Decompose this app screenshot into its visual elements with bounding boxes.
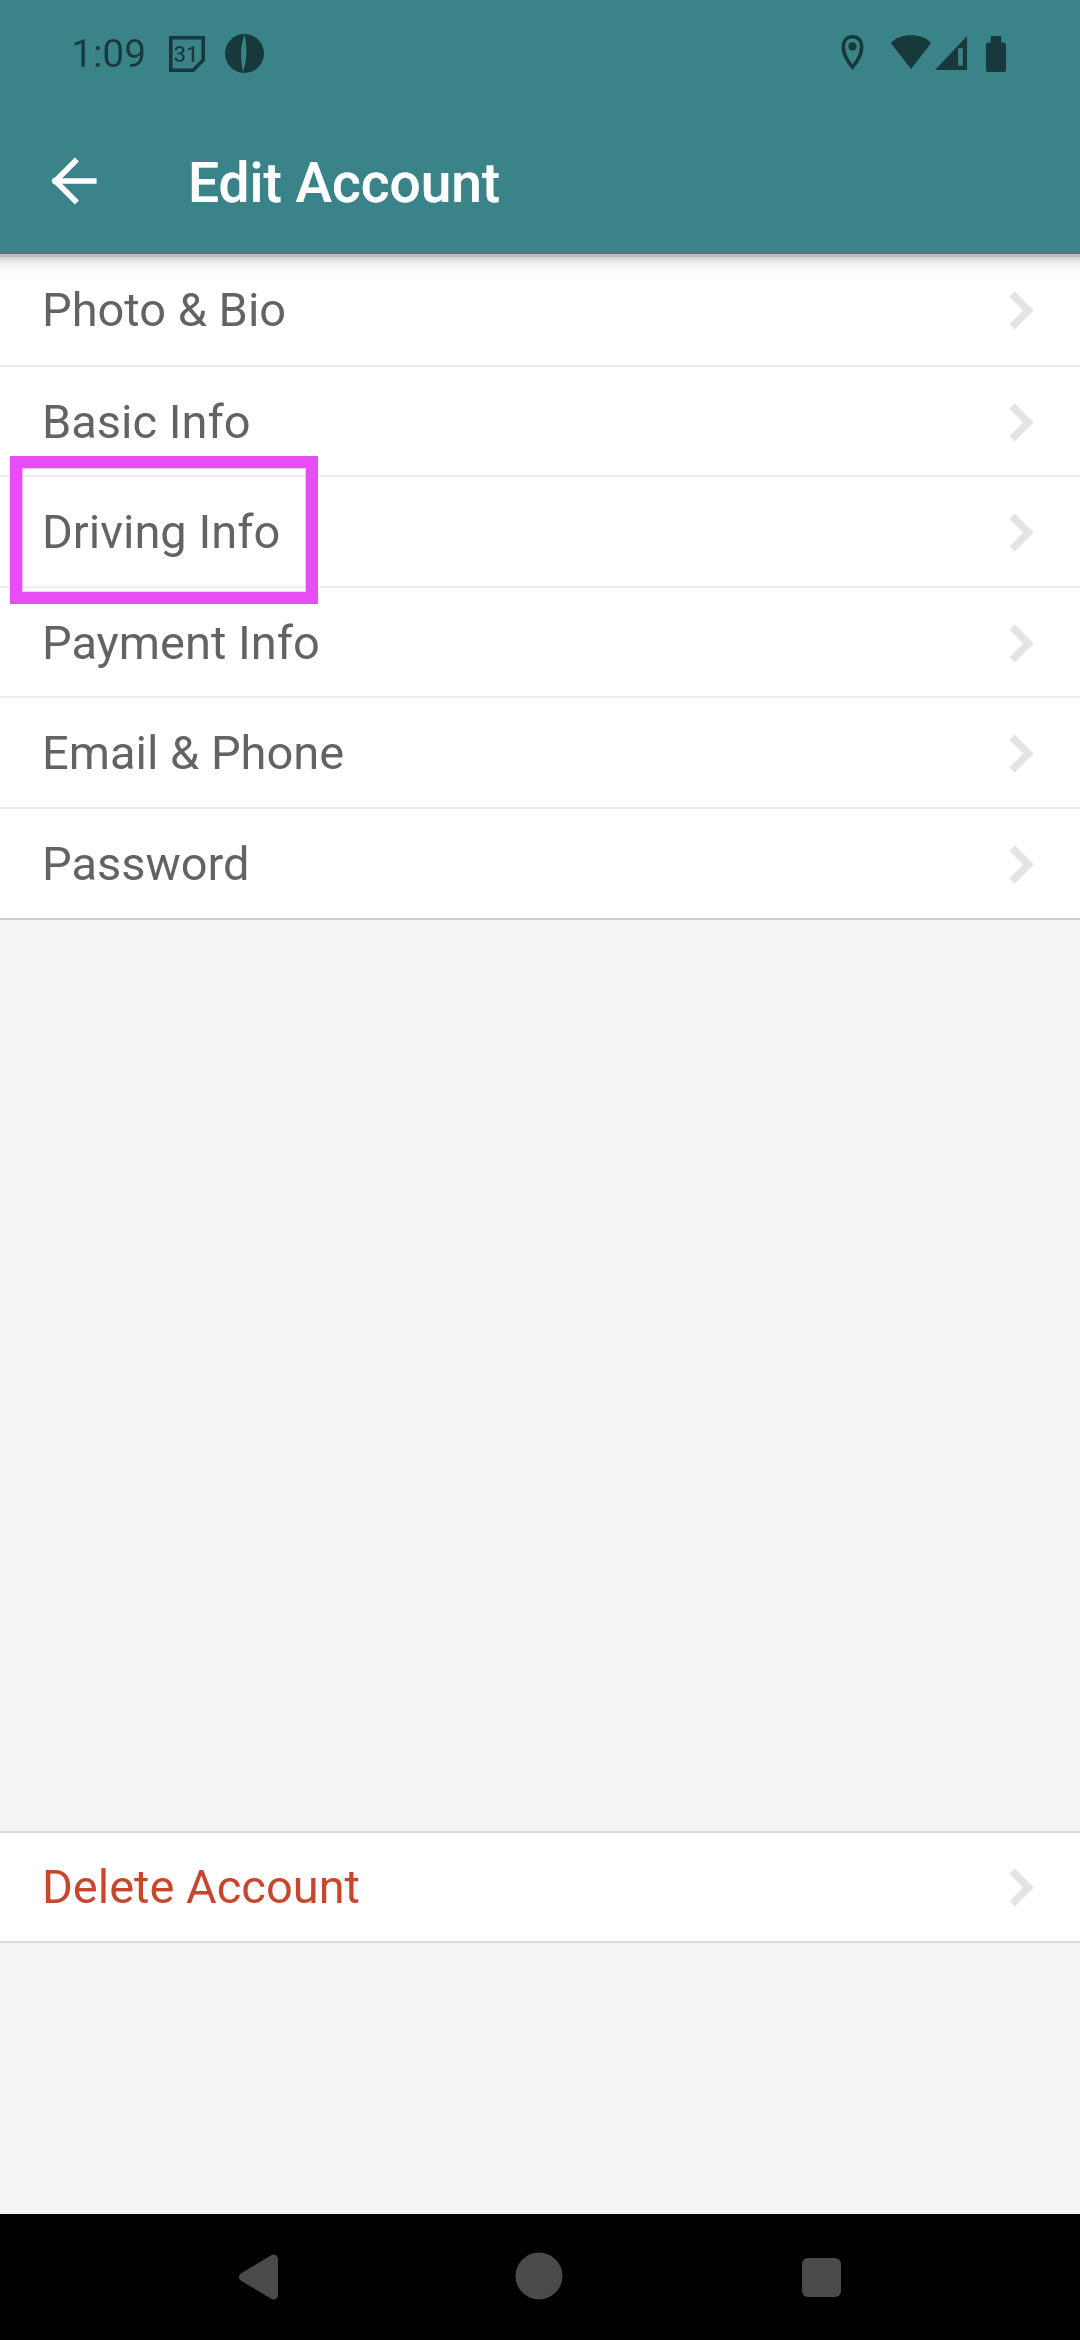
staticText: Payment Info — [42, 615, 320, 670]
button[interactable]: Email & Phone — [0, 698, 1080, 809]
staticText: Email & Phone — [42, 725, 345, 780]
button[interactable]: Back — [20, 97, 130, 242]
button[interactable]: Recents — [800, 2256, 843, 2299]
staticText: Edit Account — [188, 151, 501, 215]
button[interactable]: Password — [0, 809, 1080, 920]
button[interactable]: Driving Info — [0, 477, 1080, 588]
button[interactable]: Basic Info — [0, 367, 1080, 477]
staticText: Driving Info — [42, 504, 281, 559]
button[interactable]: Photo & Bio — [0, 254, 1080, 367]
staticText: 1:09 — [71, 31, 147, 77]
button[interactable]: Delete Account — [0, 1833, 1080, 1941]
staticText: Photo & Bio — [42, 282, 287, 337]
staticText: Delete Account — [42, 1859, 360, 1914]
staticText: 31 — [168, 42, 204, 68]
staticText: Password — [42, 836, 250, 891]
button[interactable]: Home — [514, 2252, 564, 2302]
button[interactable]: Payment Info — [0, 588, 1080, 698]
staticText: Basic Info — [42, 394, 251, 449]
button[interactable]: Back — [238, 2255, 278, 2299]
